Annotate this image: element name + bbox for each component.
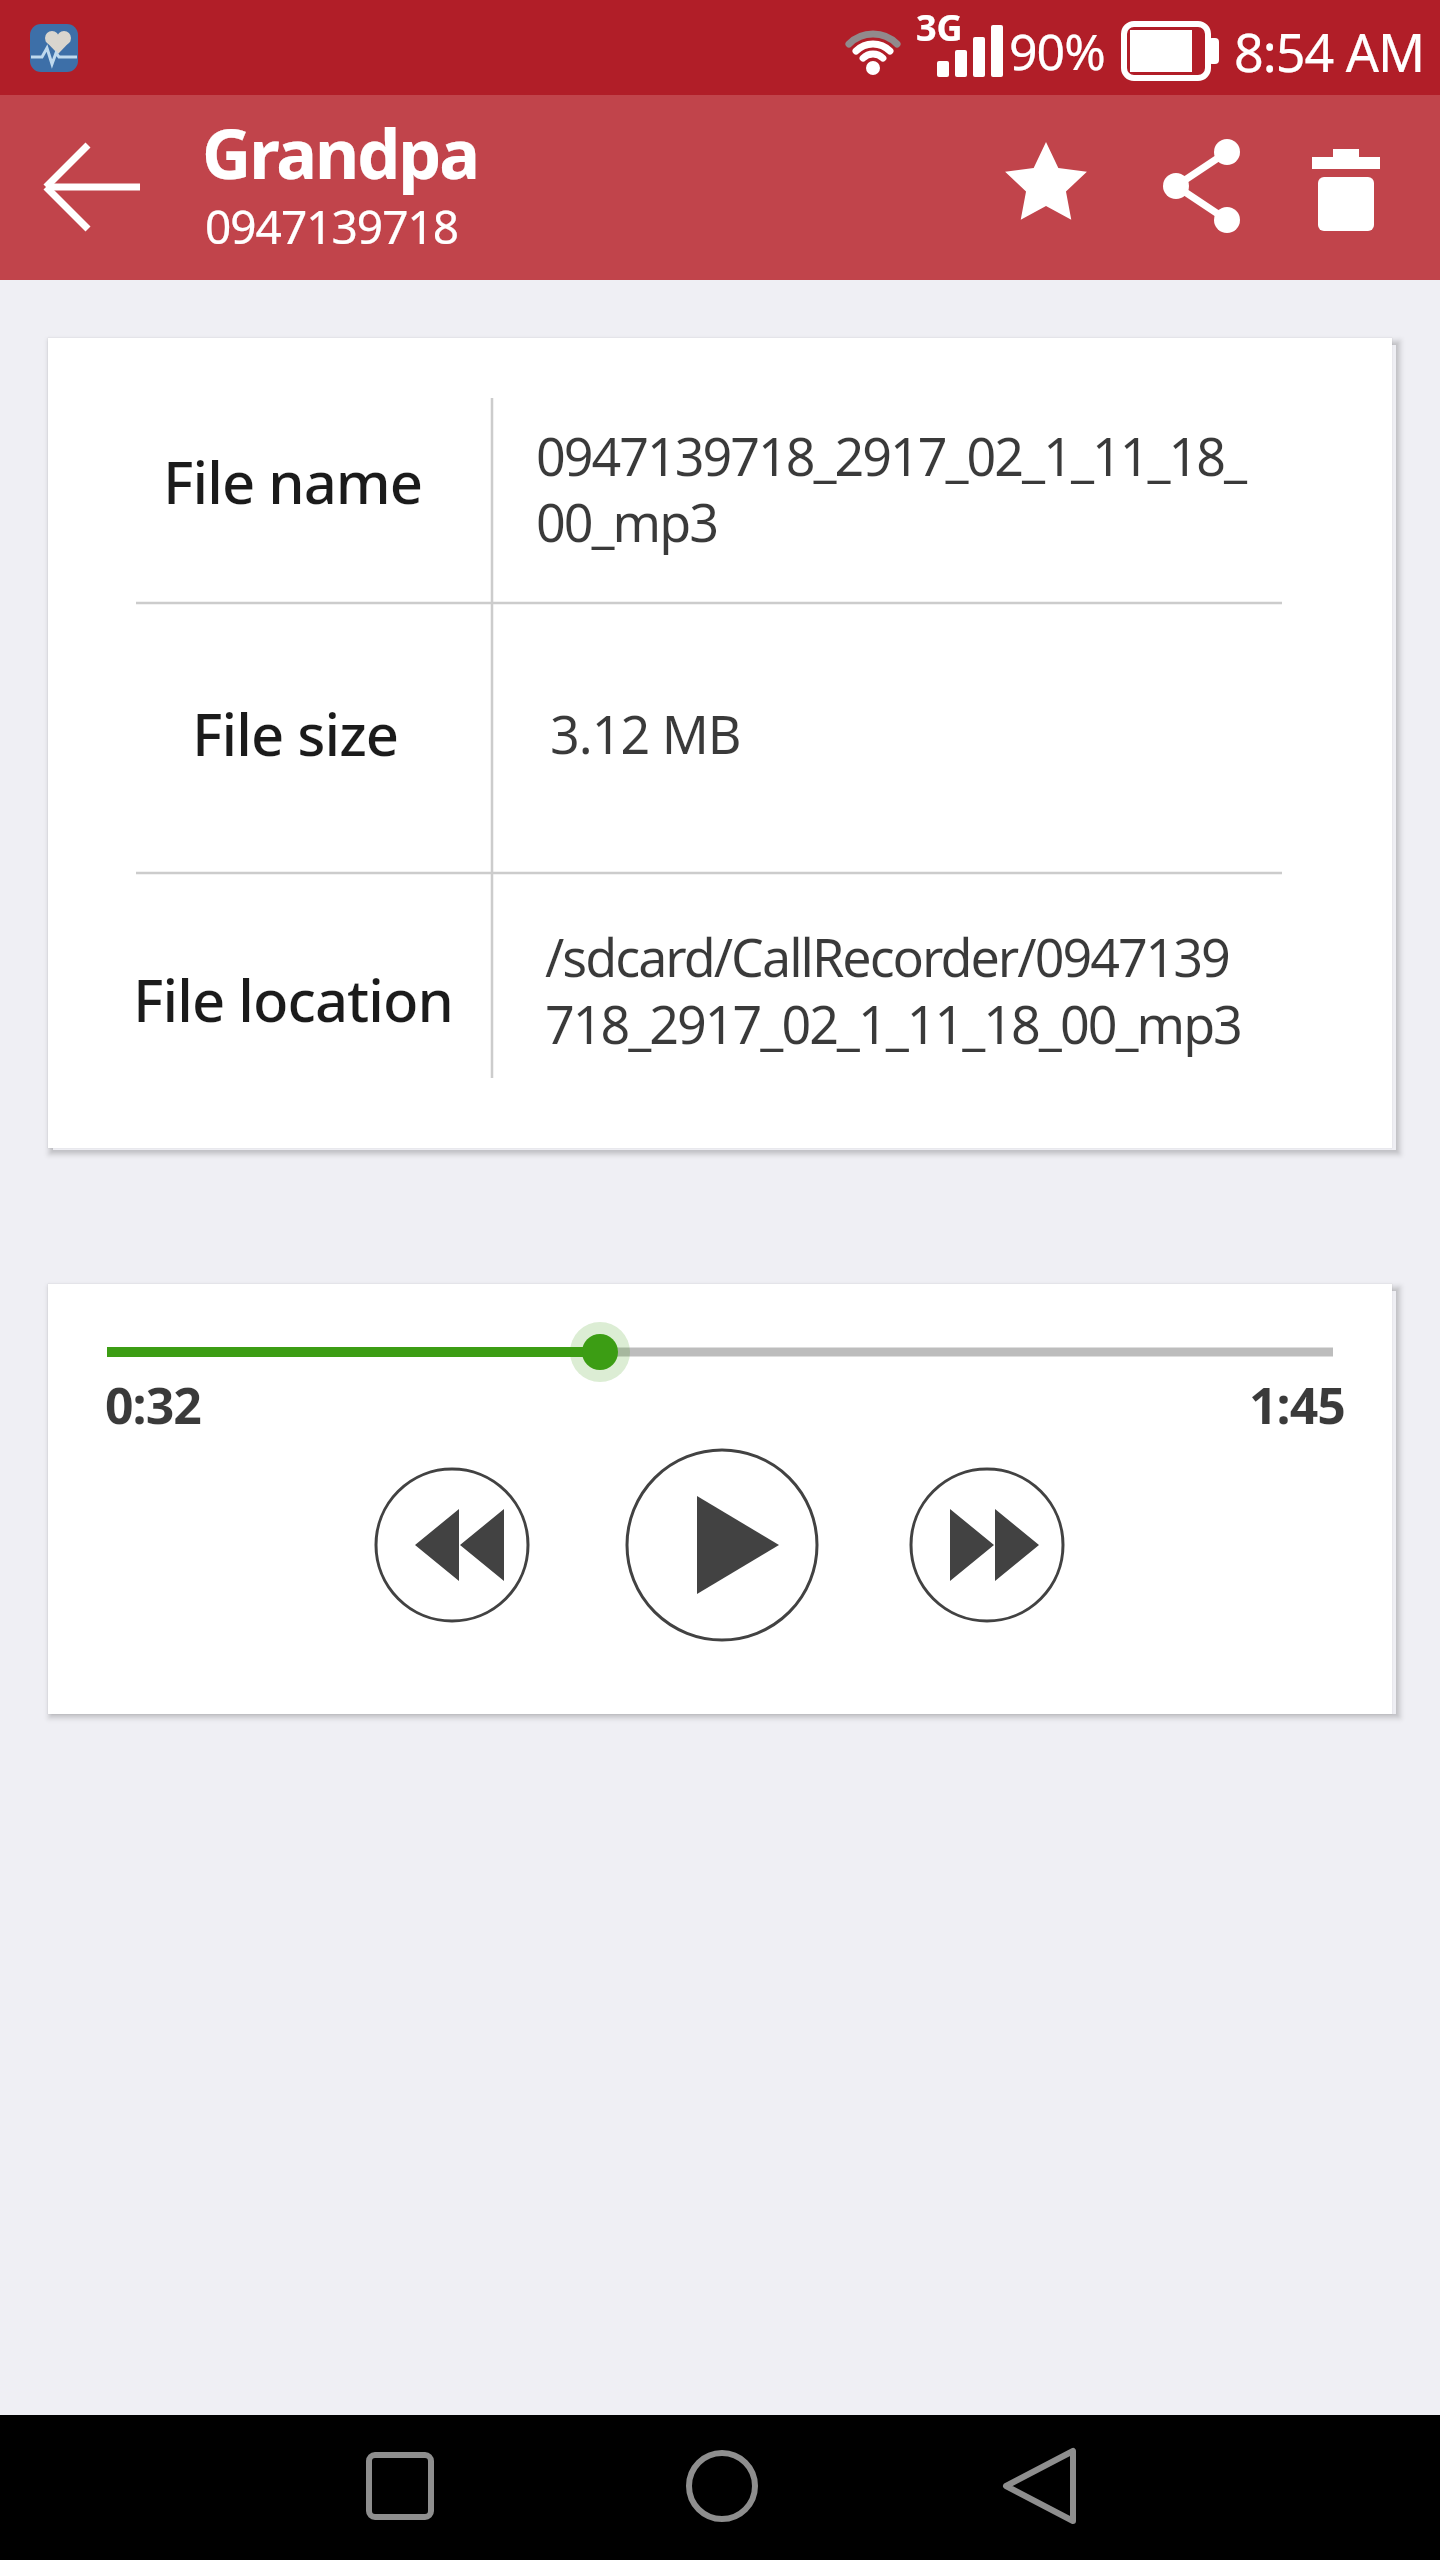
staticText: 1:45: [1249, 1371, 1345, 1439]
staticText: 3G: [916, 3, 963, 52]
staticText: Grandpa: [202, 106, 478, 199]
button[interactable]: [980, 2426, 1100, 2546]
staticText: File size: [192, 694, 399, 773]
staticText: File name: [163, 442, 423, 521]
staticText: File location: [133, 960, 453, 1039]
button[interactable]: [340, 2426, 460, 2546]
staticText: 0947139718: [205, 195, 459, 258]
staticText: 0947139718_2917_02_1_11_18_ 00_mp3: [536, 420, 1246, 557]
button[interactable]: [25, 117, 165, 257]
staticText: 8:54 AM: [1234, 16, 1425, 87]
button[interactable]: [625, 1448, 819, 1642]
staticText: 3.12 MB: [550, 698, 741, 769]
button[interactable]: [1286, 127, 1406, 247]
staticText: 90%: [1009, 17, 1105, 85]
staticText: 0:32: [105, 1371, 201, 1439]
button[interactable]: [986, 125, 1106, 245]
button[interactable]: [372, 1465, 532, 1625]
button[interactable]: [907, 1465, 1067, 1625]
button[interactable]: [1141, 126, 1261, 246]
button[interactable]: [662, 2426, 782, 2546]
staticText: /sdcard/CallRecorder/0947139 718_2917_02…: [545, 921, 1241, 1060]
